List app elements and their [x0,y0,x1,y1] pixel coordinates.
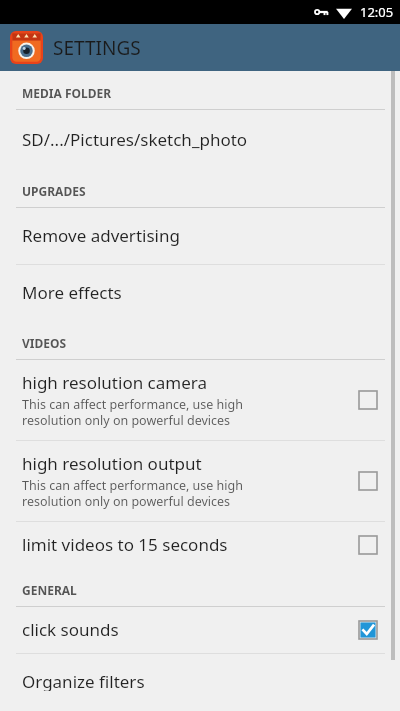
staticText: SETTINGS [53,35,141,61]
staticText: Organize filters [22,670,145,691]
staticText: click sounds [22,618,119,641]
staticText: Remove advertising [22,224,180,247]
button[interactable]: Unchecked [358,471,378,491]
staticText: SD/.../Pictures/sketch_photo [22,128,248,151]
staticText: UPGRADES [22,183,86,199]
staticText: high resolution camera [22,371,207,394]
staticText: GENERAL [22,582,77,598]
button[interactable]: Unchecked [358,535,378,555]
button[interactable]: high resolution output [0,441,400,521]
staticText: VIDEOS [22,335,67,351]
staticText: More effects [22,281,122,304]
button[interactable]: high resolution camera [0,360,400,440]
staticText: high resolution output [22,452,202,475]
button[interactable]: SD/.../Pictures/sketch_photo [0,110,400,169]
button[interactable]: More effects [0,265,400,321]
staticText: 12:05 [360,3,394,21]
staticText: MEDIA FOLDER [22,85,112,101]
button[interactable]: limit videos to 15 seconds [0,522,400,568]
button[interactable]: Unchecked [358,390,378,410]
button[interactable]: click sounds [0,607,400,653]
staticText: limit videos to 15 seconds [22,533,228,556]
button[interactable]: Remove advertising [0,208,400,264]
staticText: This can affect performance, use high re… [22,477,243,509]
staticText: This can affect performance, use high re… [22,396,243,428]
button[interactable]: Checked [358,620,378,640]
button[interactable]: Organize filters [0,654,400,711]
